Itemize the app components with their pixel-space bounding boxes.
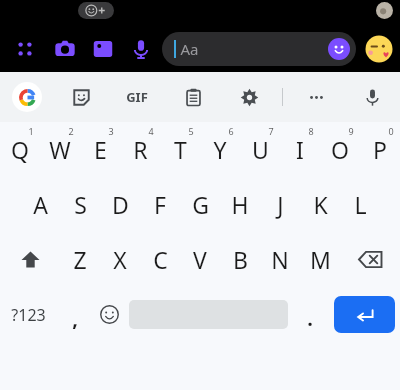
button[interactable]: O [320, 122, 360, 177]
staticText: 9 [348, 125, 354, 137]
button[interactable]: S [60, 177, 100, 232]
button[interactable]: Gallery [88, 34, 118, 64]
button[interactable]: Clipboard [177, 81, 209, 113]
staticText: U [252, 134, 269, 165]
staticText: ?123 [11, 304, 46, 326]
button[interactable]: H [220, 177, 260, 232]
staticText: Z [73, 244, 87, 275]
button[interactable]: Backspace [340, 232, 400, 287]
staticText: K [313, 189, 328, 220]
button[interactable]: Shift [0, 232, 60, 287]
button[interactable]: Comma [57, 287, 92, 342]
staticText: GIF [126, 88, 148, 106]
staticText: N [271, 244, 289, 275]
staticText: Q [11, 134, 29, 165]
button[interactable]: Y [200, 122, 240, 177]
staticText: 0 [388, 125, 394, 137]
button[interactable]: D [100, 177, 140, 232]
button[interactable]: Send emoji [364, 34, 394, 64]
staticText: J [277, 189, 284, 220]
staticText: V [193, 244, 207, 275]
staticText: L [354, 189, 367, 220]
button[interactable]: M [300, 232, 340, 287]
button[interactable]: N [260, 232, 300, 287]
button[interactable]: Google search [12, 82, 42, 112]
staticText: T [174, 134, 187, 165]
button[interactable]: Emoji [92, 287, 127, 342]
staticText: W [49, 134, 71, 165]
button[interactable]: T [160, 122, 200, 177]
button[interactable]: ?123 [0, 287, 57, 342]
staticText: . [307, 305, 313, 332]
button[interactable]: R [120, 122, 160, 177]
button[interactable]: I [280, 122, 320, 177]
button[interactable]: Add reaction [78, 2, 114, 19]
button[interactable]: F [140, 177, 180, 232]
button[interactable]: J [260, 177, 300, 232]
staticText: 8 [308, 125, 314, 137]
staticText: R [133, 134, 148, 165]
button[interactable]: Aa [162, 32, 356, 66]
staticText: A [33, 189, 48, 220]
staticText: , [72, 305, 78, 332]
staticText: 5 [188, 125, 194, 137]
staticText: D [112, 189, 129, 220]
staticText: 1 [28, 125, 34, 137]
staticText: B [233, 244, 248, 275]
staticText: G [192, 189, 209, 220]
button[interactable]: GIF [120, 80, 154, 114]
button[interactable]: V [180, 232, 220, 287]
button[interactable]: U [240, 122, 280, 177]
button[interactable]: E [80, 122, 120, 177]
staticText: H [231, 189, 249, 220]
button[interactable]: Camera [50, 34, 80, 64]
button[interactable]: Z [60, 232, 100, 287]
staticText: E [94, 134, 107, 165]
button[interactable]: Period [290, 287, 329, 342]
button[interactable]: L [340, 177, 380, 232]
button[interactable]: Stickers [65, 81, 97, 113]
staticText: 2 [68, 125, 74, 137]
staticText: Aa [180, 39, 199, 59]
staticText: I [296, 134, 304, 165]
staticText: X [113, 244, 127, 275]
button[interactable]: W [40, 122, 80, 177]
button[interactable]: Enter [334, 296, 395, 333]
staticText: C [153, 244, 168, 275]
button[interactable]: K [300, 177, 340, 232]
staticText: F [154, 189, 166, 220]
button[interactable]: A [20, 177, 60, 232]
button[interactable]: P [360, 122, 400, 177]
staticText: S [74, 189, 87, 220]
staticText: Y [213, 134, 227, 165]
button[interactable]: G [180, 177, 220, 232]
button[interactable]: C [140, 232, 180, 287]
staticText: P [373, 134, 387, 165]
staticText: 7 [268, 125, 274, 137]
button[interactable]: X [100, 232, 140, 287]
staticText: 6 [228, 125, 234, 137]
staticText: M [310, 244, 331, 275]
staticText: O [331, 134, 349, 165]
button[interactable]: More apps [10, 34, 40, 64]
button[interactable]: Settings [233, 81, 265, 113]
button[interactable]: Voice input [356, 81, 388, 113]
button[interactable]: More options [300, 81, 332, 113]
staticText: 4 [148, 125, 154, 137]
button[interactable]: Profile [376, 2, 393, 19]
button[interactable]: B [220, 232, 260, 287]
staticText: 3 [108, 125, 114, 137]
button[interactable]: Q [0, 122, 40, 177]
button[interactable]: Voice message [126, 34, 156, 64]
button[interactable]: Emoji [328, 38, 350, 60]
